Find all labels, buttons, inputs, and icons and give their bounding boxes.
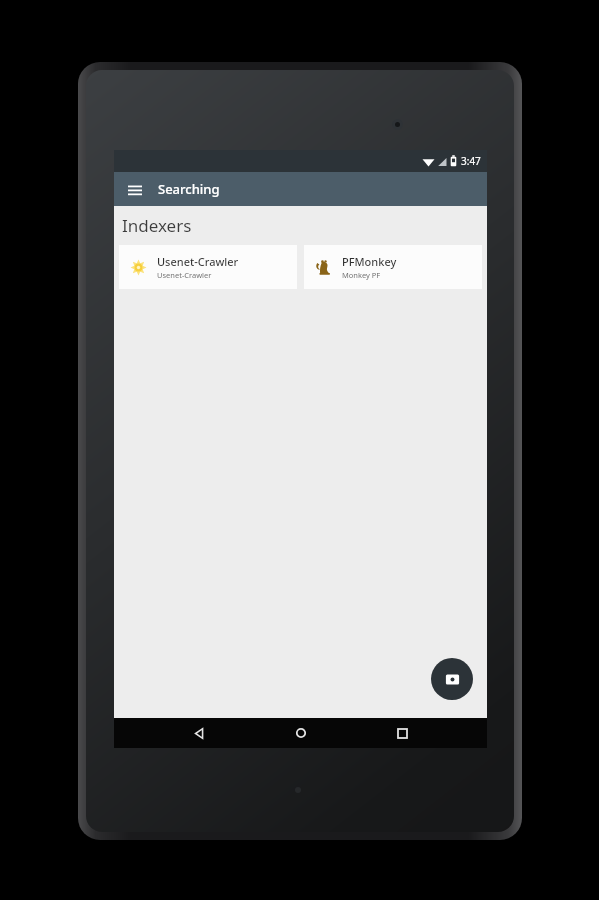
button[interactable]: Open navigation drawer: [120, 174, 150, 204]
button[interactable]: PFMonkey: [304, 245, 482, 289]
button[interactable]: Usenet-Crawler: [119, 245, 297, 289]
staticText: PFMonkey: [342, 254, 397, 269]
staticText: Indexers: [122, 214, 192, 237]
staticText: Searching: [158, 180, 220, 198]
button[interactable]: Recent apps: [385, 718, 419, 748]
button[interactable]: Back: [182, 718, 216, 748]
staticText: Usenet-Crawler: [157, 254, 239, 269]
staticText: 3:47: [461, 154, 481, 168]
button[interactable]: Home: [284, 718, 318, 748]
staticText: Usenet-Crawler: [157, 270, 212, 280]
button[interactable]: New search: [431, 658, 473, 700]
staticText: Monkey PF: [342, 270, 381, 280]
